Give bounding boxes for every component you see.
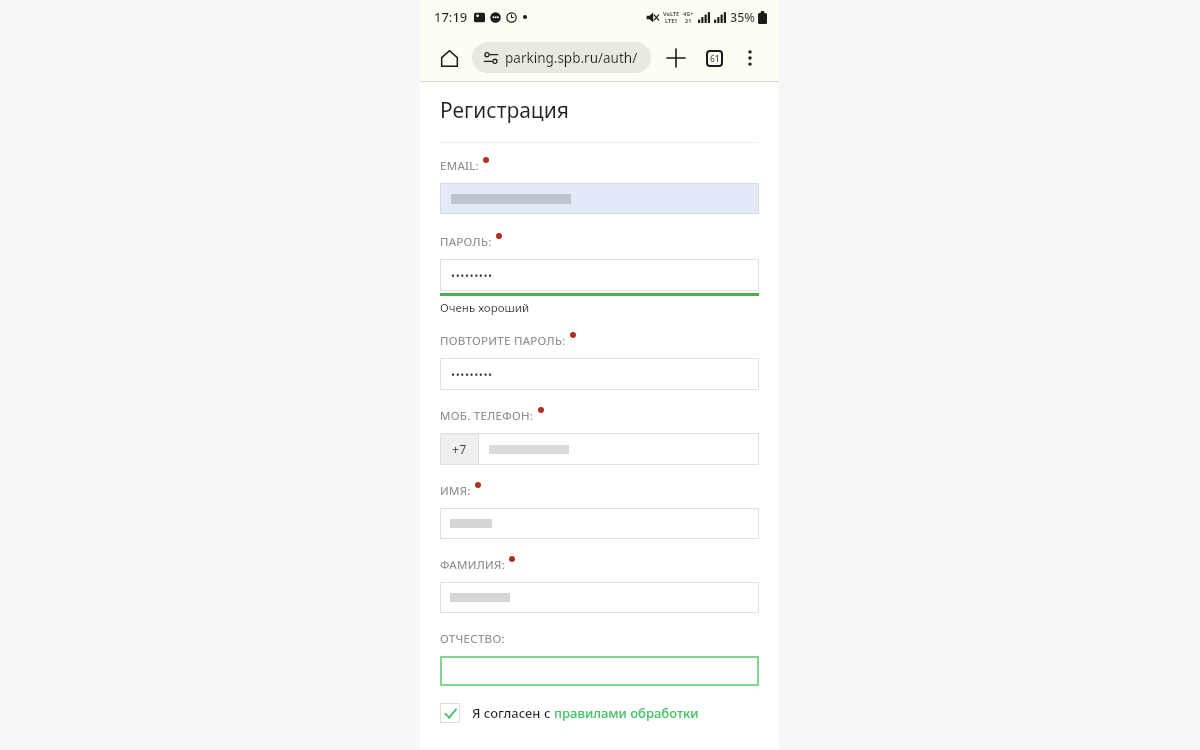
staticText: ОТЧЕСТВО: — [440, 631, 505, 647]
button[interactable] — [440, 656, 759, 686]
staticText: ПАРОЛЬ: — [440, 234, 492, 250]
button[interactable]: parking.spb.ru/auth/r — [472, 42, 651, 73]
staticText: ••••••••• — [451, 268, 493, 283]
staticText: правилами обработки — [554, 704, 699, 722]
button[interactable] — [440, 183, 759, 214]
staticText: 17:19 — [434, 8, 468, 26]
staticText: ИМЯ: — [440, 483, 471, 499]
button[interactable] — [440, 582, 759, 613]
staticText: 4G+ — [683, 10, 694, 17]
button[interactable]: Home — [434, 43, 464, 73]
button[interactable]: ••••••••• — [440, 259, 759, 291]
button[interactable]: More options — [735, 43, 765, 73]
button[interactable] — [440, 508, 759, 539]
button[interactable]: ••••••••• — [440, 358, 759, 390]
staticText: LTE1 — [665, 17, 678, 24]
staticText: VoLTE — [663, 10, 680, 17]
staticText: 35% — [730, 9, 755, 26]
staticText: ••••••••• — [451, 367, 493, 382]
staticText: Регистрация — [440, 96, 569, 125]
staticText: ФАМИЛИЯ: — [440, 557, 505, 573]
button[interactable]: +7 — [440, 433, 759, 465]
staticText: 21 — [685, 17, 692, 24]
button[interactable]: New tab — [661, 43, 691, 73]
staticText: ПОВТОРИТЕ ПАРОЛЬ: — [440, 333, 566, 349]
staticText: parking.spb.ru/auth/r — [505, 49, 641, 67]
button[interactable]: Я согласен с — [440, 703, 699, 723]
staticText: EMAIL: — [440, 158, 479, 174]
staticText: +7 — [452, 441, 467, 458]
staticText: МОБ. ТЕЛЕФОН: — [440, 408, 534, 424]
staticText: Я согласен с — [472, 704, 554, 722]
button[interactable]: Tabs, 61 open — [699, 43, 729, 73]
staticText: Очень хороший — [440, 300, 530, 316]
staticText: 61 — [710, 53, 720, 65]
